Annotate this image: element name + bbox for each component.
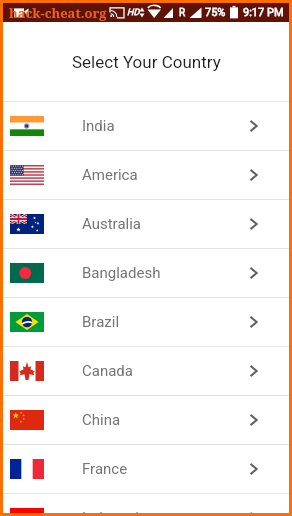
staticText: hack-cheat.org [9,4,107,22]
button[interactable]: India [3,102,289,150]
button[interactable]: Indonesia [3,494,289,513]
staticText: Indonesia [82,509,148,513]
staticText: HD [127,7,140,18]
button[interactable]: America [3,151,289,199]
button[interactable]: China [3,396,289,444]
staticText: 9:17 PM [243,6,284,19]
staticText: Australia [82,215,142,233]
staticText: Canada [82,362,133,380]
staticText: R [179,7,186,19]
staticText: India [82,117,115,135]
button[interactable]: Bangladesh [3,249,289,297]
staticText: Select Your Country [72,52,221,72]
button[interactable]: Canada [3,347,289,395]
button[interactable]: Australia [3,200,289,248]
button[interactable]: Brazil [3,298,289,346]
staticText: Brazil [82,313,120,331]
button[interactable]: France [3,445,289,493]
staticText: 75% [205,6,226,19]
staticText: France [82,460,128,478]
staticText: Bangladesh [82,264,161,282]
staticText: China [82,411,121,429]
staticText: America [82,166,138,184]
